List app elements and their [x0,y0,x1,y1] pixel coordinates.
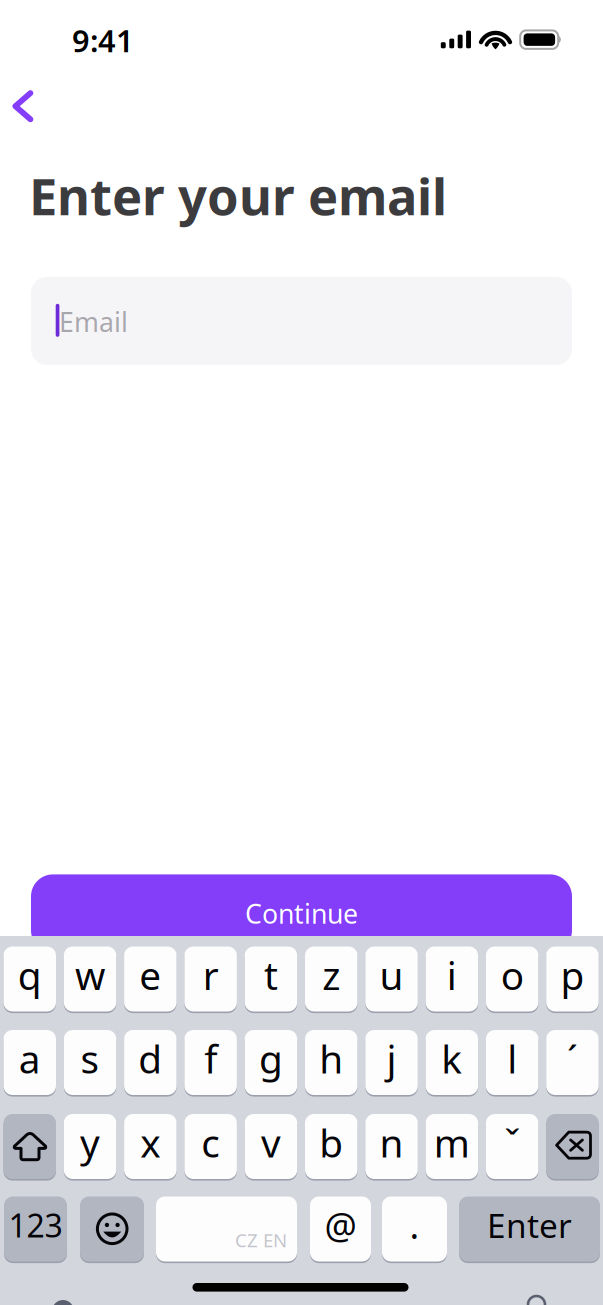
button[interactable]: 123 [4,1196,67,1261]
button[interactable]: d [124,1030,177,1095]
button[interactable]: s [64,1030,116,1095]
staticText: k [441,1033,462,1084]
staticText: Enter your email [29,162,447,229]
button[interactable]: t [245,946,297,1011]
staticText: n [379,1117,403,1168]
button[interactable]: i [426,946,478,1011]
staticText: b [319,1117,343,1168]
staticText: e [139,949,161,1001]
button[interactable]: q [3,946,56,1011]
button[interactable]: j [365,1030,418,1095]
staticText: 9:41 [72,20,134,61]
staticText: i [447,949,457,1001]
button[interactable]: ˇ [486,1114,538,1179]
button[interactable]: k [426,1030,478,1095]
button[interactable]: p [546,946,599,1011]
staticText: p [560,949,584,1001]
button[interactable]: Email [31,277,572,365]
button[interactable]: Emoji [80,1196,603,1305]
button[interactable]: Space [156,1196,297,1261]
staticText: ˇ [504,1117,520,1168]
button[interactable]: o [486,946,538,1011]
staticText: w [75,949,105,1001]
button[interactable]: e [124,946,177,1011]
staticText: . [409,1201,419,1249]
staticText: Continue [245,896,358,931]
button[interactable]: Back [0,0,603,1305]
button[interactable]: b [305,1114,357,1179]
staticText: g [259,1033,283,1084]
button[interactable]: y [64,1114,116,1179]
staticText: r [203,949,219,1001]
staticText: a [19,1033,41,1084]
button[interactable]: r [184,946,237,1011]
staticText: f [204,1033,217,1084]
staticText: d [138,1033,162,1084]
staticText: Enter [487,1203,572,1247]
button[interactable]: c [184,1114,237,1179]
button[interactable]: m [426,1114,478,1179]
staticText: x [140,1117,160,1168]
button[interactable]: l [486,1030,538,1095]
staticText: c [201,1117,220,1168]
staticText: v [261,1117,281,1168]
button[interactable]: u [365,946,418,1011]
staticText: z [322,949,340,1001]
staticText: @ [324,1201,356,1249]
button[interactable]: h [305,1030,357,1095]
button[interactable]: a [3,1030,56,1095]
button[interactable]: x [124,1114,177,1179]
staticText: l [507,1033,517,1084]
button[interactable]: . [382,1196,447,1261]
button[interactable]: v [245,1114,297,1179]
button[interactable]: w [64,946,116,1011]
staticText: t [264,949,278,1001]
staticText: h [319,1033,343,1084]
staticText: j [386,1033,396,1084]
staticText: y [80,1117,100,1168]
button[interactable]: g [245,1030,297,1095]
button[interactable]: n [365,1114,418,1179]
staticText: CZ EN [235,1228,287,1252]
button[interactable]: Delete [546,1114,603,1305]
button[interactable]: @ [310,1196,371,1261]
button[interactable]: z [305,946,357,1011]
button[interactable]: f [184,1030,237,1095]
staticText: q [18,949,42,1001]
staticText: 123 [8,1204,62,1246]
staticText: Email [59,304,128,339]
staticText: m [434,1117,470,1168]
button[interactable]: Shift [3,1114,603,1305]
button[interactable]: Enter [459,1196,600,1261]
staticText: s [80,1033,99,1084]
staticText: u [379,949,403,1001]
button[interactable]: Continue [31,874,572,952]
button[interactable]: ´ [546,1030,599,1095]
staticText: o [501,949,524,1001]
staticText: ´ [567,1033,578,1084]
